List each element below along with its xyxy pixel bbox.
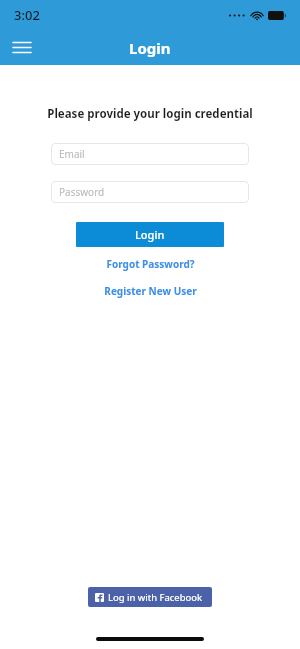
button[interactable]: Log in with Facebook [88, 587, 212, 607]
staticText: Email [59, 147, 85, 161]
staticText: Register New User [104, 284, 197, 298]
staticText: Login [129, 38, 171, 58]
staticText: Please provide your login credential [0, 106, 300, 122]
button[interactable]: Register New User [0, 284, 300, 298]
button[interactable]: Email [51, 143, 249, 165]
staticText: Log in with Facebook [108, 591, 203, 604]
staticText: 3:02 [14, 6, 40, 24]
staticText: Forgot Password? [106, 257, 195, 271]
button[interactable]: Open navigation menu [0, 30, 44, 65]
button[interactable]: Login [76, 222, 224, 247]
button[interactable]: Forgot Password? [0, 257, 300, 271]
staticText: Password [59, 185, 105, 199]
button[interactable]: Password [51, 181, 249, 203]
staticText: Login [135, 227, 165, 242]
